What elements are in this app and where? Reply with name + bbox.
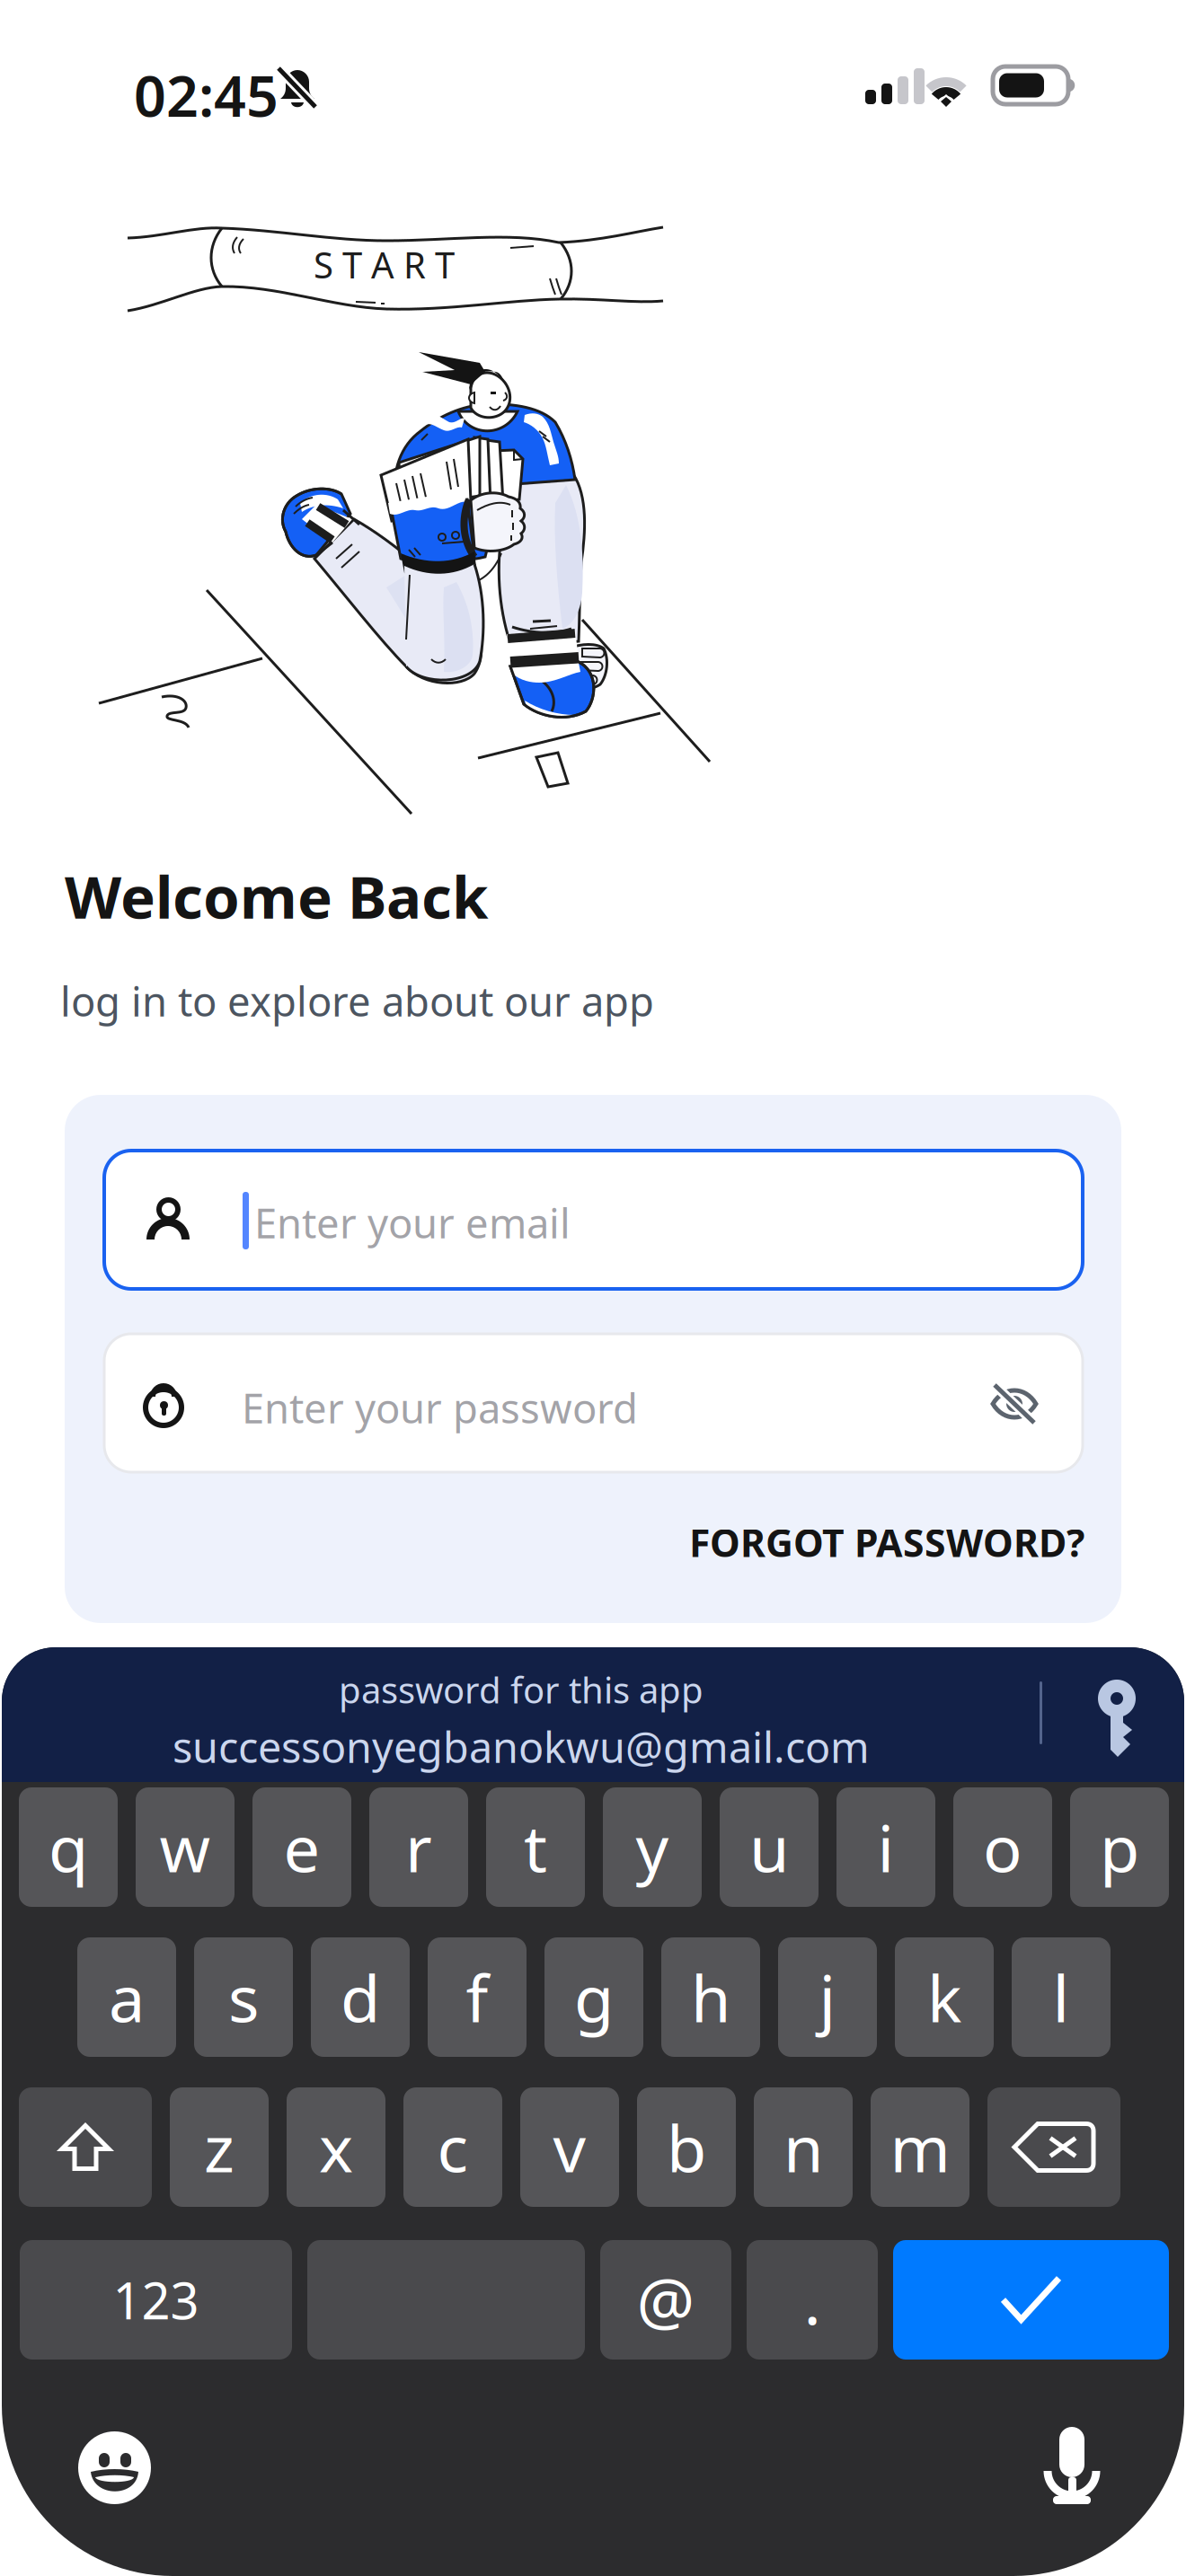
button[interactable]: . [747,2240,878,2360]
staticText: password for this app [339,1666,704,1713]
button[interactable]: Enter your password [104,1334,1083,1472]
staticText: y [636,1804,669,1890]
staticText: log in to explore about our app [60,974,654,1028]
button[interactable]: Passwords [1089,1680,1145,1759]
staticText: Welcome Back [65,857,489,935]
staticText: q [49,1804,88,1890]
button[interactable]: v [520,2087,619,2207]
button[interactable]: f [428,1937,527,2057]
staticText: v [553,2104,586,2190]
button[interactable]: 123 [20,2240,292,2360]
staticText: d [341,1954,380,2040]
staticText: a [109,1954,145,2040]
staticText: Enter your email [254,1195,571,1250]
staticText: z [204,2104,235,2190]
button[interactable]: d [311,1937,410,2057]
button[interactable]: a [77,1937,176,2057]
button[interactable]: h [661,1937,760,2057]
button[interactable]: Return [893,2240,1169,2360]
staticText: . [804,2257,821,2343]
staticText: o [983,1804,1022,1890]
staticText: FORGOT PASSWORD? [689,1517,1084,1568]
staticText: f [466,1954,488,2040]
button[interactable]: t [486,1787,585,1907]
staticText: t [524,1804,547,1890]
staticText: 02:45 [134,57,279,132]
staticText: b [667,2104,706,2190]
button[interactable]: FORGOT PASSWORD? [653,1506,1084,1578]
button[interactable]: u [720,1787,819,1907]
button[interactable]: j [778,1937,877,2057]
staticText: s [228,1954,259,2040]
button[interactable]: x [287,2087,385,2207]
button[interactable]: Dictation [1046,2427,1098,2504]
button[interactable]: k [895,1937,994,2057]
button[interactable]: s [194,1937,293,2057]
staticText: n [783,2104,823,2190]
staticText: @ [637,2257,695,2343]
staticText: x [319,2104,353,2190]
button[interactable]: r [369,1787,468,1907]
button[interactable]: m [871,2087,969,2207]
staticText: u [749,1804,789,1890]
staticText: l [1053,1954,1070,2040]
button[interactable]: Emoji [78,2431,151,2504]
staticText: p [1100,1804,1139,1890]
staticText: i [877,1804,894,1890]
button[interactable] [307,2240,585,2360]
staticText: g [574,1954,614,2040]
staticText: S T A R T [314,241,455,288]
button[interactable]: e [252,1787,351,1907]
button[interactable]: Shift [19,2087,152,2207]
button[interactable]: p [1070,1787,1169,1907]
button[interactable]: Enter your email [104,1151,1083,1289]
button[interactable]: password for this app [22,1653,1020,1787]
button[interactable]: @ [600,2240,731,2360]
staticText: r [405,1804,432,1890]
button[interactable]: w [136,1787,235,1907]
button[interactable]: b [637,2087,736,2207]
staticText: w [159,1804,211,1890]
staticText: j [819,1954,836,2040]
button[interactable]: n [754,2087,853,2207]
staticText: k [927,1954,961,2040]
staticText: Enter your password [242,1381,638,1435]
button[interactable]: Delete [987,2087,1120,2207]
staticText: m [890,2104,950,2190]
button[interactable]: z [170,2087,269,2207]
button[interactable]: g [544,1937,643,2057]
button[interactable]: y [603,1787,702,1907]
staticText: h [691,1954,730,2040]
button[interactable]: q [19,1787,118,1907]
button[interactable]: i [836,1787,935,1907]
staticText: 123 [113,2266,199,2333]
button[interactable]: l [1012,1937,1111,2057]
staticText: c [437,2104,469,2190]
staticText: successonyegbanokwu@gmail.com [173,1719,870,1774]
staticText: e [283,1804,320,1890]
button[interactable]: c [403,2087,502,2207]
button[interactable]: o [953,1787,1052,1907]
